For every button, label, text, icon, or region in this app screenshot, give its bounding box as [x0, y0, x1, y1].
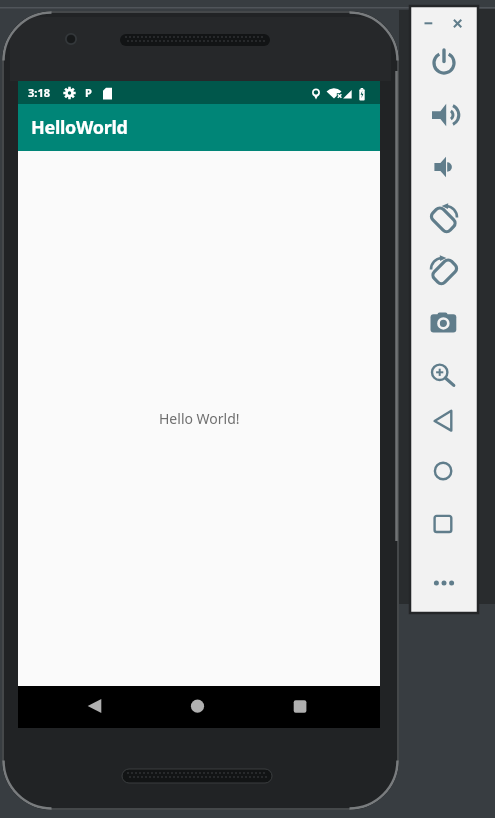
- button[interactable]: [424, 95, 464, 135]
- button[interactable]: [424, 199, 464, 239]
- button[interactable]: [424, 401, 464, 441]
- staticText: HelloWorld: [31, 115, 128, 140]
- staticText: Hello World!: [159, 409, 240, 428]
- button[interactable]: [177, 686, 217, 728]
- button[interactable]: [424, 355, 464, 395]
- button[interactable]: [424, 302, 464, 342]
- button[interactable]: [443, 9, 471, 37]
- staticText: P: [85, 85, 92, 100]
- staticText: 3:18: [28, 85, 50, 100]
- button[interactable]: [280, 686, 320, 728]
- button[interactable]: [424, 563, 464, 603]
- button[interactable]: [424, 43, 464, 83]
- button[interactable]: [424, 251, 464, 291]
- button[interactable]: [424, 147, 464, 187]
- button[interactable]: [424, 451, 464, 491]
- button[interactable]: [424, 504, 464, 544]
- button[interactable]: [414, 9, 442, 37]
- button[interactable]: [74, 686, 114, 728]
